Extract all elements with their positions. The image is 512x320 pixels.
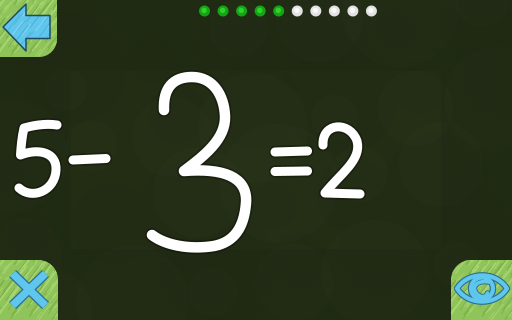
- button[interactable]: Back: [0, 0, 57, 57]
- button[interactable]: Show answer: [451, 260, 512, 320]
- button[interactable]: Close: [0, 260, 58, 320]
